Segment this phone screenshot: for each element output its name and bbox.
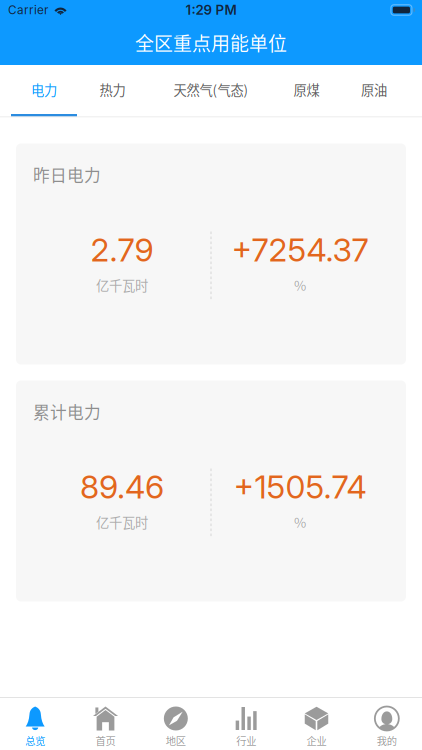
staticText: 全区重点用能单位 — [135, 29, 287, 56]
staticText: 原煤 — [293, 80, 319, 99]
staticText: +1505.74 — [233, 467, 366, 506]
staticText: 企业 — [306, 733, 326, 748]
staticText: 行业 — [236, 733, 256, 748]
button[interactable]: 电力 — [11, 65, 77, 116]
button[interactable]: 原油 — [339, 65, 409, 116]
staticText: 1:29 PM — [185, 2, 236, 18]
button[interactable]: 我的 — [352, 706, 422, 748]
staticText: 地区 — [166, 733, 186, 748]
staticText: 热力 — [99, 80, 125, 99]
button[interactable]: 行业 — [211, 706, 281, 748]
button[interactable]: 首页 — [70, 706, 141, 748]
staticText: 累计电力 — [33, 399, 101, 424]
staticText: % — [294, 275, 306, 294]
staticText: 首页 — [95, 733, 115, 748]
staticText: Carrier — [8, 3, 48, 17]
button[interactable]: 企业 — [281, 706, 352, 748]
staticText: 亿千瓦时 — [96, 512, 148, 531]
staticText: 亿千瓦时 — [96, 275, 148, 294]
button[interactable]: 天然气(气态) — [148, 65, 274, 116]
staticText: 天然气(气态) — [173, 80, 248, 99]
staticText: 89.46 — [80, 467, 164, 506]
staticText: 我的 — [377, 733, 397, 748]
staticText: 原油 — [361, 80, 387, 99]
staticText: 总览 — [25, 733, 45, 748]
staticText: % — [294, 512, 306, 531]
staticText: 电力 — [31, 80, 57, 99]
button[interactable]: 地区 — [141, 706, 211, 748]
staticText: 昨日电力 — [33, 162, 101, 187]
staticText: +7254.37 — [231, 230, 368, 269]
staticText: 2.79 — [90, 230, 153, 269]
button[interactable]: 热力 — [77, 65, 148, 116]
button[interactable]: 原煤 — [274, 65, 339, 116]
button[interactable]: 总览 — [0, 706, 70, 748]
